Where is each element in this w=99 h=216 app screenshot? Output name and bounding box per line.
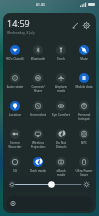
button[interactable]: Auto rotate <box>4 73 26 101</box>
button[interactable]: Mobile data <box>73 73 95 101</box>
button[interactable]: NFC <box>73 129 95 157</box>
staticText: Auto rotate <box>6 85 24 89</box>
staticText: RO's Ouest6 <box>6 57 24 61</box>
button[interactable]: Ultra Power Saver <box>73 157 95 185</box>
staticText: Torch <box>52 57 70 61</box>
staticText: A1 4G <box>36 3 45 7</box>
button[interactable]: eBook mode <box>50 157 72 185</box>
button[interactable]: Dark mode <box>27 157 49 185</box>
staticText: Personal hotspot <box>75 113 93 121</box>
staticText: Screenshot <box>29 113 47 117</box>
staticText: Location <box>6 113 24 117</box>
button[interactable]: Bluetooth <box>27 45 49 73</box>
button[interactable]: Settings <box>82 21 91 30</box>
button[interactable]: RO's Ouest6 <box>4 45 26 73</box>
button[interactable]: Connect/Share <box>27 73 49 101</box>
button[interactable]: Media <box>6 196 93 211</box>
button[interactable]: Mute <box>73 45 95 73</box>
button[interactable]: Airplane mode <box>50 73 72 101</box>
staticText: 5G <box>6 169 24 173</box>
staticText: Wednesday, 8 July <box>7 30 35 34</box>
staticText: Airplane mode <box>52 85 70 93</box>
button[interactable]: Personal hotspot <box>73 101 95 129</box>
button[interactable]: Screen Recorder <box>4 129 26 157</box>
staticText: Connect/Share <box>29 85 47 93</box>
staticText: Do Not Disturb <box>52 141 70 149</box>
staticText: eBook mode <box>52 169 70 177</box>
staticText: Dark mode <box>29 169 47 173</box>
button[interactable]: 5G <box>4 157 26 185</box>
button[interactable]: Eye Comfort <box>50 101 72 129</box>
staticText: Bluetooth <box>29 57 47 61</box>
staticText: Mobile data <box>75 85 93 89</box>
button[interactable]: Torch <box>50 45 72 73</box>
staticText: Wireless Projection <box>29 141 47 149</box>
button[interactable]: Screenshot <box>27 101 49 129</box>
button[interactable]: Wireless Projection <box>27 129 49 157</box>
staticText: Screen Recorder <box>6 141 24 149</box>
button[interactable]: Do Not Disturb <box>50 129 72 157</box>
button[interactable]: Edit <box>71 21 80 30</box>
staticText: Eye Comfort <box>52 113 70 117</box>
staticText: Ultra Power Saver <box>75 169 93 177</box>
button[interactable]: Location <box>4 101 26 129</box>
staticText: NFC <box>75 141 93 145</box>
staticText: Mute <box>75 57 93 61</box>
button[interactable]: Brightness <box>6 177 93 192</box>
staticText: 14:59 <box>7 17 30 29</box>
